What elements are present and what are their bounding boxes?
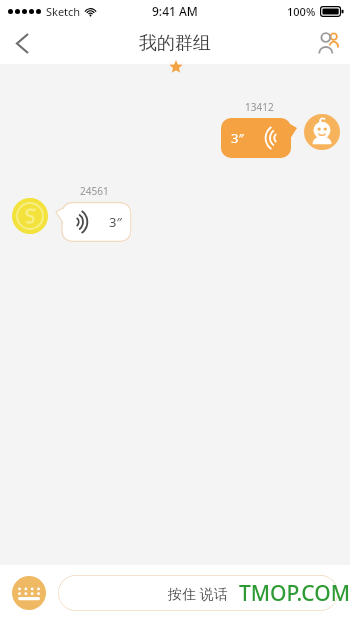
- staticText: TMOP.COM: [239, 579, 350, 608]
- staticText: 24561: [80, 184, 109, 198]
- staticText: 13412: [245, 100, 274, 114]
- button[interactable]: Member 24561 avatar: [12, 198, 48, 234]
- button[interactable]: Switch to keyboard: [12, 576, 46, 610]
- staticText: 100%: [287, 4, 316, 19]
- staticText: 3″: [109, 213, 122, 231]
- staticText: Sketch: [46, 4, 81, 19]
- button[interactable]: Play voice message, 3 seconds: [221, 118, 297, 158]
- staticText: 3″: [231, 129, 244, 147]
- staticText: 9:41 AM: [152, 3, 198, 19]
- staticText: 我的群组: [139, 32, 211, 55]
- staticText: 按住 说话: [168, 584, 228, 603]
- button[interactable]: Group members: [306, 22, 350, 64]
- button[interactable]: Play voice message, 3 seconds: [56, 202, 132, 242]
- button[interactable]: 按住 说话: [58, 575, 338, 611]
- button[interactable]: Back: [0, 22, 44, 64]
- button[interactable]: Member 13412 avatar: [304, 114, 340, 150]
